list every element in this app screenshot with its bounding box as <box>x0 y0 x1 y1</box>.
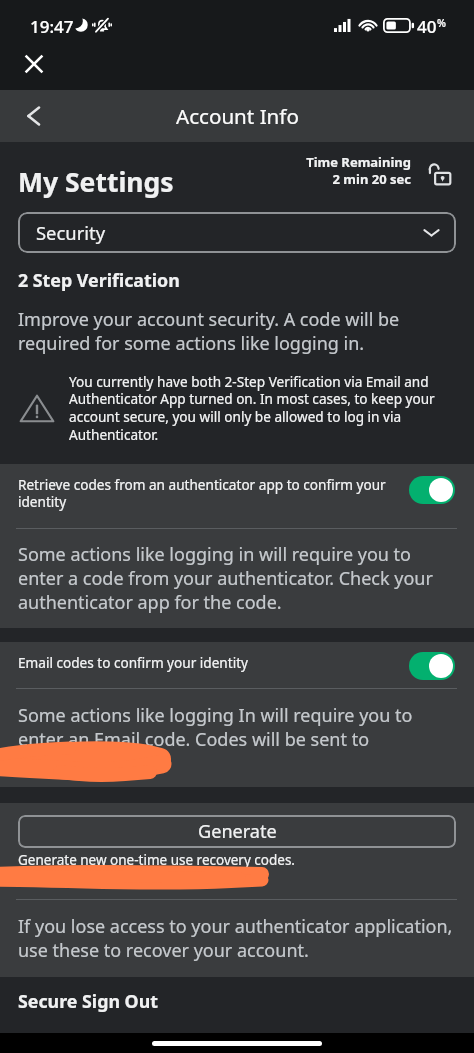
staticText: Improve your account security. A code wi… <box>18 307 400 355</box>
button[interactable]: Close <box>20 50 48 78</box>
staticText: Generate new one-time use recovery codes… <box>18 851 295 869</box>
button[interactable]: Secure Sign Out <box>18 989 158 1013</box>
staticText: You currently have both 2-Step Verificat… <box>69 372 461 444</box>
staticText: 19:47 <box>30 15 74 38</box>
staticText: Account Info <box>176 102 299 130</box>
staticText: Security <box>36 220 106 245</box>
button[interactable]: Generate <box>18 815 456 848</box>
staticText: 40 <box>417 15 437 38</box>
staticText: Generate <box>198 819 277 844</box>
button[interactable]: Unlock <box>428 162 451 186</box>
staticText: 2 Step Verification <box>18 268 180 292</box>
staticText: My Settings <box>18 164 174 200</box>
button[interactable]: Back <box>20 102 48 130</box>
staticText: Some actions like logging In will requir… <box>18 703 413 775</box>
button[interactable]: Toggle <box>409 476 455 504</box>
staticText: Time Remaining 2 min 20 sec <box>251 153 411 188</box>
staticText: Retrieve codes from an authenticator app… <box>18 475 396 511</box>
staticText: % <box>437 16 446 30</box>
staticText: Email codes to confirm your identity <box>18 653 249 672</box>
button[interactable]: Security <box>18 212 456 253</box>
button[interactable]: Toggle <box>409 652 455 680</box>
staticText: If you lose access to your authenticator… <box>18 914 453 962</box>
staticText: Some actions like logging in will requir… <box>18 542 433 614</box>
